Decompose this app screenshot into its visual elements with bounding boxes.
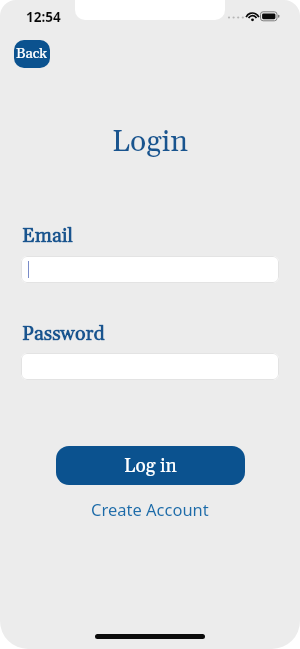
staticText: Email — [22, 224, 74, 249]
button[interactable]: Log in — [56, 446, 245, 485]
button[interactable]: Create Account — [91, 498, 209, 520]
staticText: Back — [16, 45, 48, 63]
button[interactable] — [21, 256, 279, 283]
staticText: Login — [0, 123, 300, 161]
staticText: Log in — [124, 454, 177, 478]
staticText: 12:54 — [26, 8, 61, 26]
button[interactable] — [21, 353, 279, 380]
button[interactable]: Back — [14, 40, 50, 68]
staticText: Password — [22, 322, 105, 347]
staticText: Create Account — [91, 498, 209, 520]
